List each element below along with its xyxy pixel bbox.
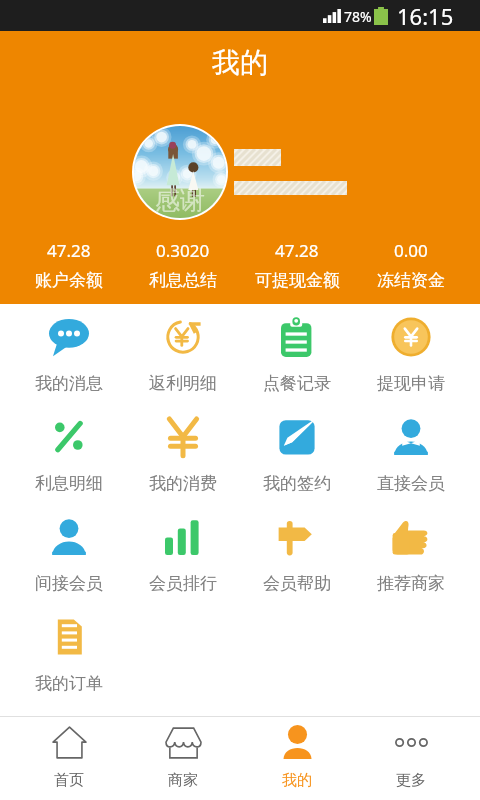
staticText: 会员帮助 <box>263 573 331 594</box>
staticText: 直接会员 <box>377 473 445 494</box>
button[interactable]: 首页 <box>12 717 126 800</box>
staticText: 账户余额 <box>35 270 103 291</box>
staticText: 我的订单 <box>35 673 103 694</box>
staticText: 提现申请 <box>377 373 445 394</box>
staticText: 推荐商家 <box>377 573 445 594</box>
staticText: 16:15 <box>397 1 454 31</box>
staticText: 我的 <box>212 45 268 80</box>
button[interactable]: 会员帮助 <box>240 504 354 604</box>
button[interactable]: 47.28 <box>12 239 126 291</box>
button[interactable]: 直接会员 <box>354 404 468 504</box>
staticText: 冻结资金 <box>377 270 445 291</box>
staticText: 会员排行 <box>149 573 217 594</box>
button[interactable]: 返利明细 <box>126 304 240 404</box>
staticText: 利息总结 <box>149 270 217 291</box>
staticText: 47.28 <box>47 239 91 262</box>
button[interactable]: 会员排行 <box>126 504 240 604</box>
button[interactable]: 我的订单 <box>12 604 126 704</box>
button[interactable]: 更多 <box>354 717 468 800</box>
button[interactable]: Profile photo <box>134 126 226 218</box>
staticText: 商家 <box>168 771 198 790</box>
button[interactable]: 提现申请 <box>354 304 468 404</box>
staticText: 利息明细 <box>35 473 103 494</box>
staticText: 78% <box>344 7 372 26</box>
staticText: 我的签约 <box>263 473 331 494</box>
staticText: 可提现金额 <box>255 270 340 291</box>
button[interactable]: 0.00 <box>354 239 468 291</box>
button[interactable]: 商家 <box>126 717 240 800</box>
button[interactable]: 利息明细 <box>12 404 126 504</box>
staticText: 感谢 <box>155 185 205 216</box>
staticText: 我的消息 <box>35 373 103 394</box>
staticText: 点餐记录 <box>263 373 331 394</box>
button[interactable]: 我的消费 <box>126 404 240 504</box>
staticText: 我的消费 <box>149 473 217 494</box>
staticText: 返利明细 <box>149 373 217 394</box>
button[interactable]: 间接会员 <box>12 504 126 604</box>
button[interactable]: 我的 <box>240 717 354 800</box>
button[interactable]: 47.28 <box>240 239 354 291</box>
button[interactable]: 我的消息 <box>12 304 126 404</box>
button[interactable]: 0.3020 <box>126 239 240 291</box>
staticText: 间接会员 <box>35 573 103 594</box>
staticText: 我的 <box>282 771 312 790</box>
staticText: 更多 <box>396 771 426 790</box>
button[interactable]: 推荐商家 <box>354 504 468 604</box>
staticText: 0.00 <box>394 239 428 262</box>
staticText: 47.28 <box>275 239 319 262</box>
button[interactable]: 我的签约 <box>240 404 354 504</box>
staticText: 首页 <box>54 771 84 790</box>
staticText: 0.3020 <box>156 239 210 262</box>
button[interactable]: 点餐记录 <box>240 304 354 404</box>
